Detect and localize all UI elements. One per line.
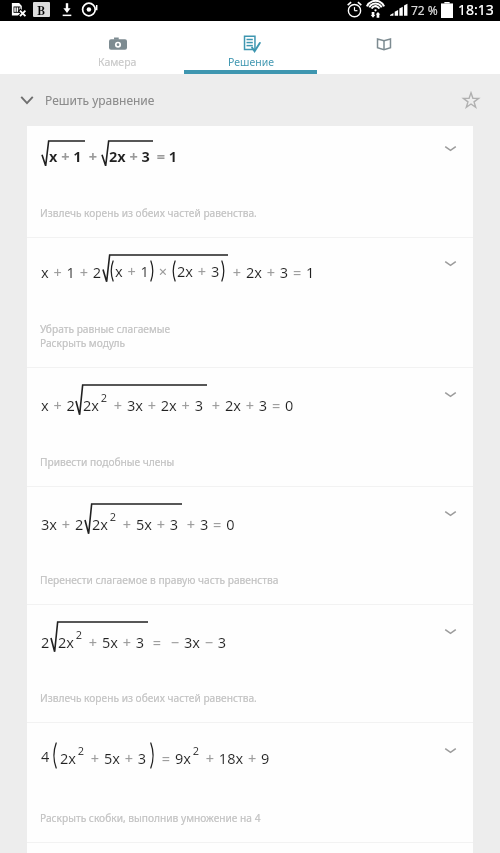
staticText: Раскрыть модуль (40, 336, 126, 350)
button[interactable]: Expand step (436, 499, 464, 527)
staticText: 2 (41, 632, 50, 652)
staticText: x + 1 + 2 (41, 262, 102, 282)
staticText: 2x + 3 (109, 146, 150, 166)
button[interactable]: Expand step (436, 736, 464, 764)
staticText: Камера (98, 55, 137, 69)
button[interactable]: Expand step (436, 380, 464, 408)
staticText: Извлечь корень из обеих частей равенства… (40, 206, 257, 220)
staticText: Раскрыть скобки, выполнив умножение на 4 (40, 811, 261, 825)
staticText: x + 1 (115, 261, 149, 281)
staticText: + (85, 146, 101, 166)
button[interactable]: Glossary (317, 21, 450, 74)
staticText: 3x + 2 (41, 514, 84, 534)
staticText: + 3 = 0 (182, 514, 235, 534)
button[interactable]: 2 (27, 605, 473, 722)
staticText: x + 2 (41, 395, 75, 415)
staticText: Решить уравнение (45, 92, 155, 108)
button[interactable]: Решение (184, 21, 317, 74)
staticText: 18:13 (458, 0, 494, 19)
button[interactable]: Expand step (436, 617, 464, 645)
button[interactable]: 3x + 2 (27, 487, 473, 604)
staticText: Извлечь корень из обеих частей равенства… (40, 691, 257, 705)
button[interactable]: x + 2 (27, 368, 473, 486)
staticText: Решение (228, 55, 274, 69)
staticText: = 1 (153, 146, 178, 166)
button[interactable]: Решить уравнение (0, 74, 500, 126)
staticText: 2x 2 + 5x + 3 (58, 627, 145, 652)
button[interactable]: Expand step (436, 249, 464, 277)
button[interactable]: Expand step (436, 134, 464, 162)
staticText: 2x + 3 (177, 261, 220, 281)
staticText: + 2x + 3 = 0 (207, 395, 294, 415)
staticText: 4 (41, 746, 50, 766)
staticText: = − 3x − 3 (148, 632, 227, 652)
staticText: x + 1 (49, 146, 82, 166)
staticText: + 2x + 3 = 1 (228, 262, 315, 282)
staticText: B (37, 2, 46, 17)
staticText: Перенести слагаемое в правую часть равен… (40, 573, 279, 587)
staticText: × (154, 261, 172, 281)
button[interactable]: Favorite (451, 80, 491, 120)
staticText: 72 % (411, 2, 438, 18)
staticText: = 9x 2 + 18x + 9 (157, 743, 270, 768)
staticText: 2x 2 + 5x + 3 (92, 509, 179, 534)
staticText: Привести подобные члены (40, 455, 175, 469)
button[interactable]: 4 (27, 723, 473, 842)
button[interactable]: x + 1 + 2 (27, 238, 473, 367)
button[interactable]: x + 1 (27, 126, 473, 237)
button[interactable]: Камера (50, 21, 184, 74)
staticText: 2x 2 + 5x + 3 (60, 743, 147, 768)
staticText: 2x 2 + 3x + 2x + 3 (83, 390, 204, 415)
staticText: Убрать равные слагаемые (40, 322, 171, 336)
